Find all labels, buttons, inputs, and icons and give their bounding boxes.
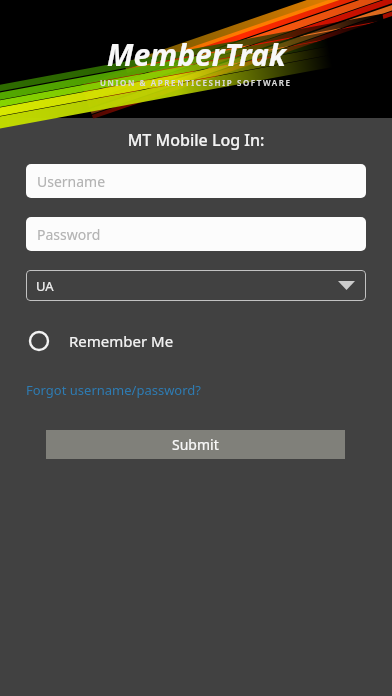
other: Open list xyxy=(338,280,355,291)
button[interactable]: UA xyxy=(26,270,366,301)
staticText: UNION & APRENTICESHIP SOFTWARE xyxy=(100,77,292,88)
staticText: MT Mobile Log In: xyxy=(0,129,392,151)
staticText: Username xyxy=(37,172,106,191)
button[interactable]: Password xyxy=(26,217,366,251)
staticText: MemberTrak xyxy=(107,34,286,75)
staticText: UA xyxy=(36,277,54,295)
staticText: Password xyxy=(37,225,101,244)
staticText: Forgot username/password? xyxy=(26,381,201,399)
button[interactable]: Forgot username/password? xyxy=(26,381,201,399)
button[interactable]: Username xyxy=(26,164,366,198)
button[interactable]: Remember Me xyxy=(26,324,174,358)
staticText: Submit xyxy=(172,435,219,454)
staticText: Remember Me xyxy=(69,331,174,351)
button[interactable]: Submit xyxy=(46,430,345,459)
